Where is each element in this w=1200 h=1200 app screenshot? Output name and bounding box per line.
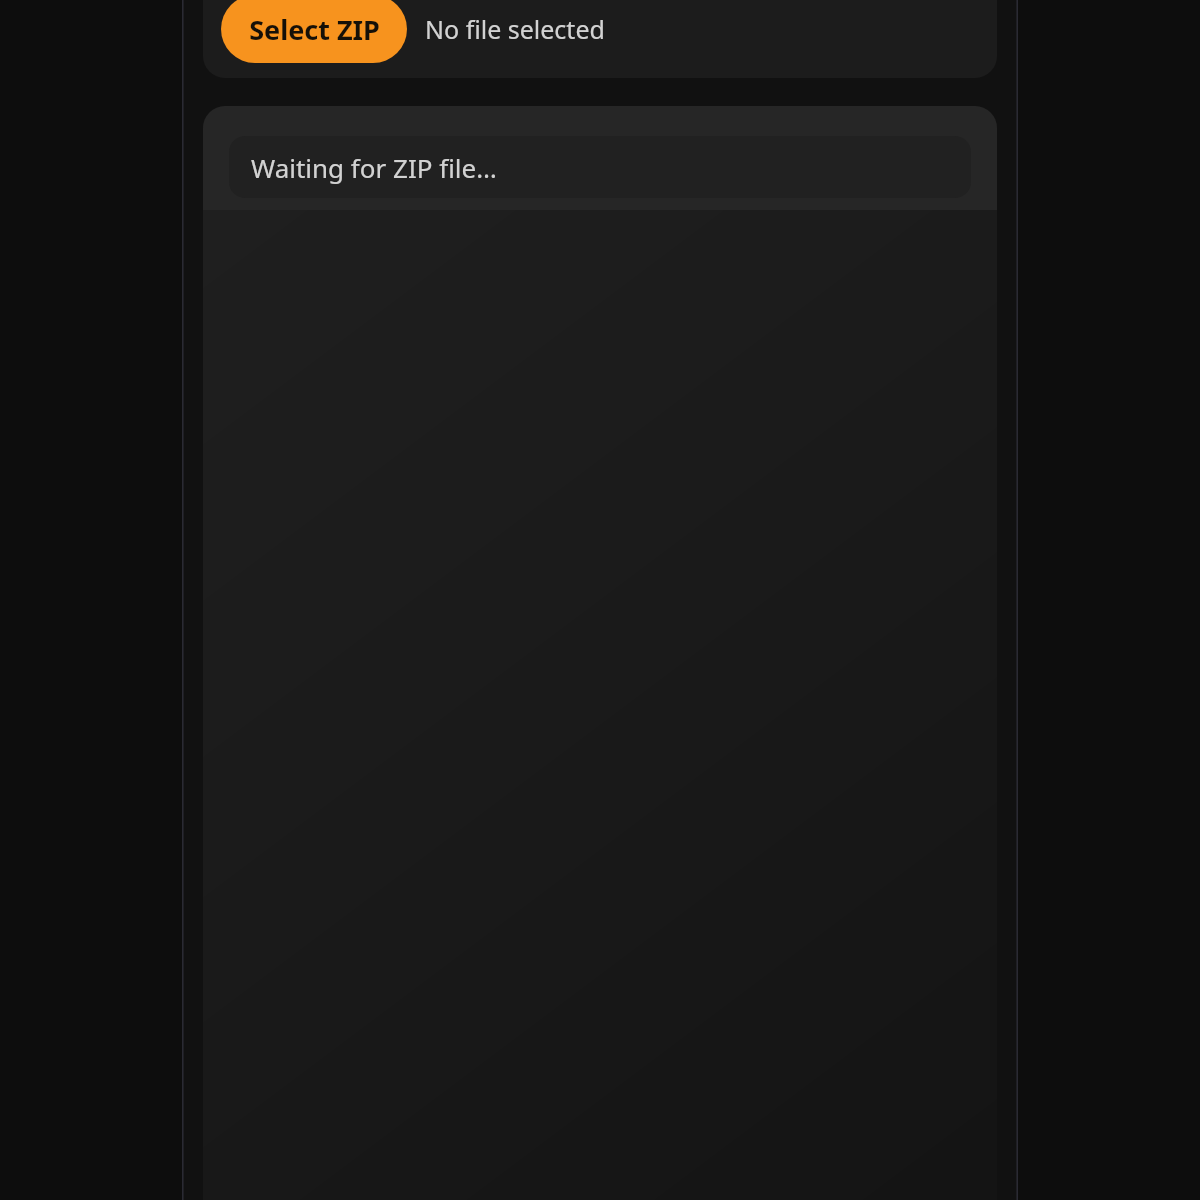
button[interactable]: Select ZIP bbox=[221, 0, 407, 63]
staticText: No file selected bbox=[425, 12, 605, 46]
staticText: Select ZIP bbox=[249, 11, 380, 48]
button[interactable]: Waiting for ZIP file… bbox=[229, 136, 971, 198]
staticText: Waiting for ZIP file… bbox=[251, 150, 497, 185]
